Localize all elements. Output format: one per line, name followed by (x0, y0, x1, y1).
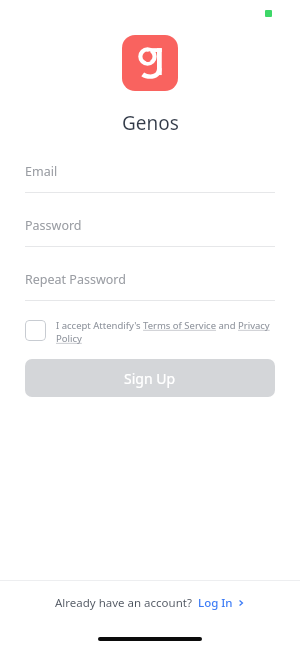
button[interactable]: Accept terms checkbox (25, 319, 275, 345)
staticText: Email (25, 163, 58, 180)
button[interactable]: Email (25, 163, 275, 193)
other: Accept terms checkbox (25, 320, 46, 341)
button[interactable]: Already have an account? (0, 595, 300, 611)
button[interactable]: Repeat Password (25, 271, 275, 301)
staticText: Log In (198, 595, 233, 611)
staticText: Sign Up (124, 369, 176, 388)
staticText: I accept Attendify's Terms of Service an… (56, 319, 275, 345)
staticText: Genos (122, 110, 179, 136)
button[interactable]: Sign Up (25, 359, 275, 397)
staticText: Already have an account? (55, 595, 192, 611)
staticText: Password (25, 217, 82, 234)
button[interactable]: Password (25, 217, 275, 247)
staticText: Repeat Password (25, 271, 126, 288)
